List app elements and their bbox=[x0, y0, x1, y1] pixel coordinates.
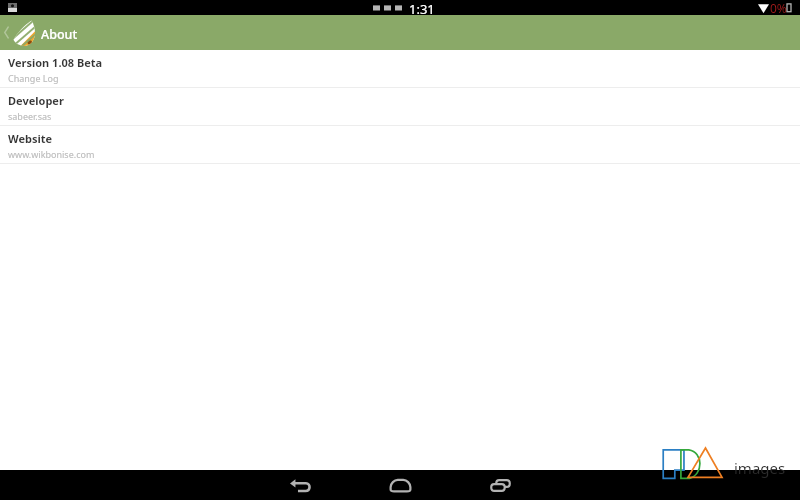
staticText: Website bbox=[8, 131, 53, 146]
button[interactable]: Version 1.08 Beta bbox=[0, 50, 800, 87]
button[interactable]: Website bbox=[0, 126, 800, 163]
staticText: www.wikbonise.com bbox=[8, 148, 95, 160]
staticText: sabeer.sas bbox=[8, 110, 52, 122]
button[interactable]: Back bbox=[0, 15, 13, 50]
button[interactable]: Recent apps bbox=[475, 470, 525, 500]
button[interactable]: Developer bbox=[0, 88, 800, 125]
staticText: About bbox=[41, 26, 78, 43]
button[interactable]: Home bbox=[375, 470, 425, 500]
staticText: Change Log bbox=[8, 72, 59, 84]
staticText: 0% bbox=[770, 0, 787, 15]
staticText: Developer bbox=[8, 93, 64, 108]
button[interactable]: Back bbox=[275, 470, 325, 500]
staticText: Version 1.08 Beta bbox=[8, 55, 103, 70]
staticText: images bbox=[734, 458, 786, 478]
staticText: 1:31 bbox=[409, 0, 435, 15]
